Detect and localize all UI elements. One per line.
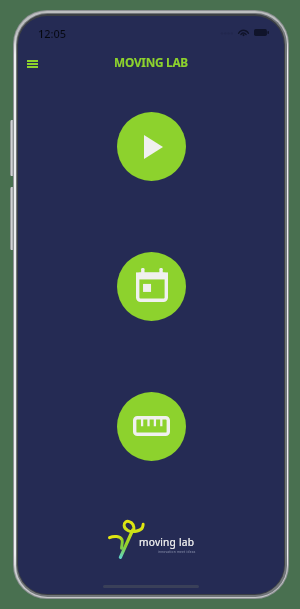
button[interactable]: Calendar bbox=[117, 252, 186, 321]
staticText: innovation meet ideas bbox=[158, 550, 196, 554]
button[interactable]: Measurements bbox=[117, 392, 186, 461]
staticText: 12:05 bbox=[38, 26, 67, 41]
button[interactable]: Open navigation menu bbox=[19, 51, 45, 77]
staticText: MOVING LAB bbox=[18, 54, 284, 70]
button[interactable]: Start activity bbox=[117, 112, 186, 181]
staticText: moving lab bbox=[139, 535, 195, 549]
